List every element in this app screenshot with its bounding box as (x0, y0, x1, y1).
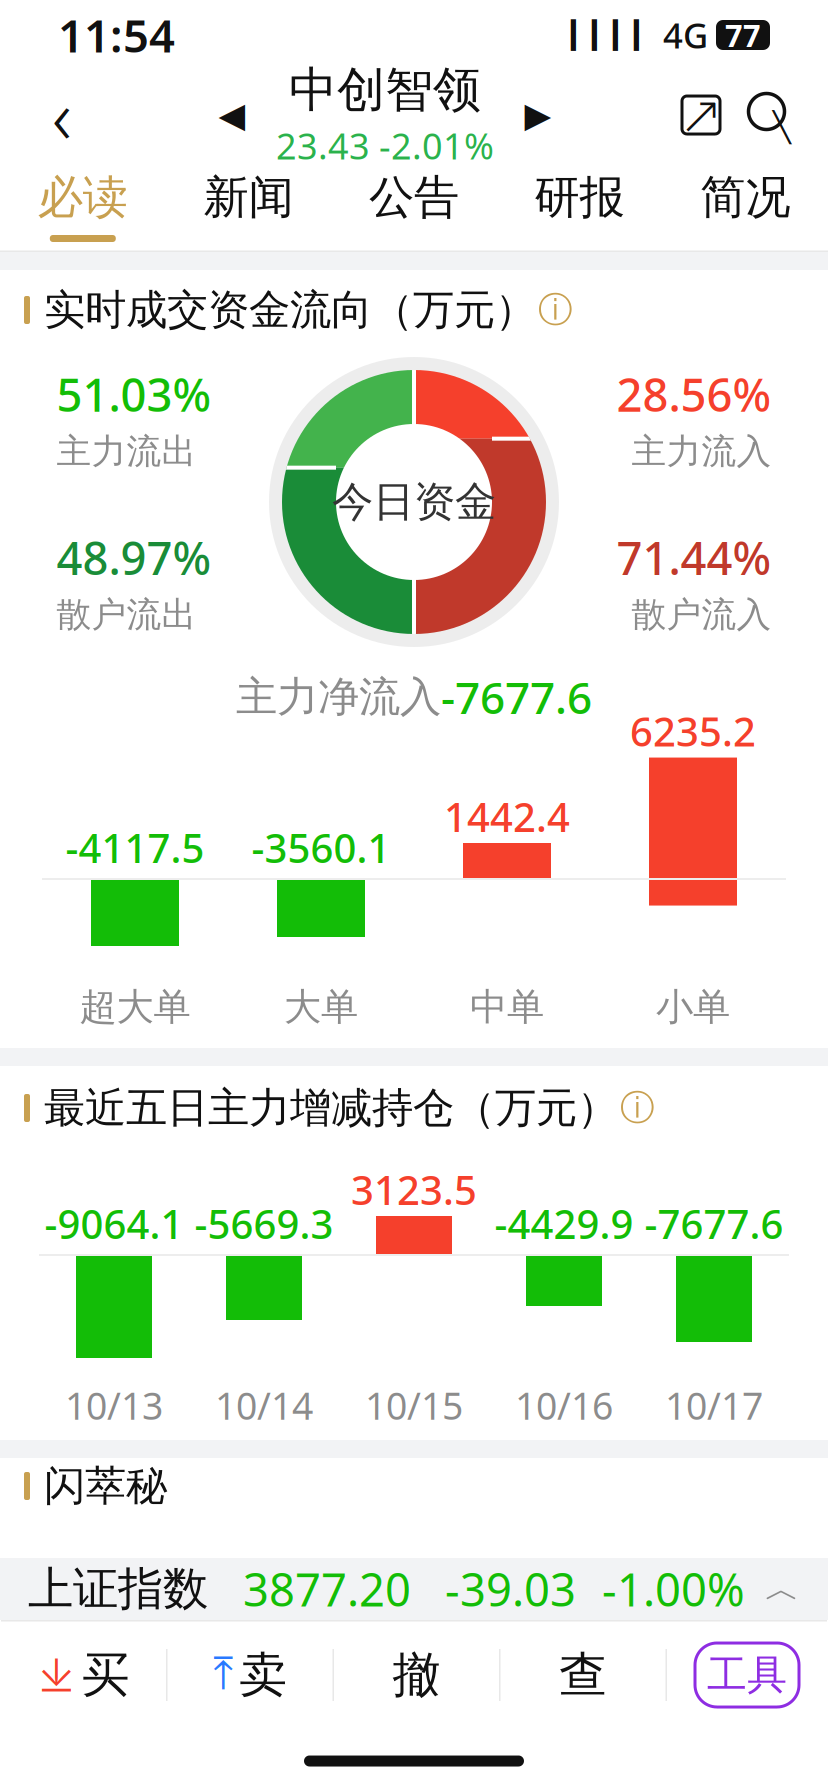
button[interactable]: ⤓ (1, 1627, 166, 1723)
staticText: 简况 (700, 170, 790, 225)
staticText: ▎▎▎▎ (571, 20, 655, 50)
button[interactable]: 简况 (662, 160, 828, 252)
staticText: -3560.1 (251, 821, 390, 874)
staticText: 研报 (535, 170, 625, 225)
staticText: 10/14 (215, 1380, 313, 1430)
staticText: ︿ (765, 1568, 800, 1610)
button[interactable]: 必读 (0, 160, 166, 252)
staticText: 4G (663, 12, 708, 58)
staticText: 11:54 (58, 5, 175, 65)
staticText: 77 (725, 15, 761, 55)
staticText: 大单 (284, 984, 358, 1030)
staticText: 主力流入 (631, 430, 771, 473)
staticText: 必读 (38, 170, 128, 225)
staticText: 10/13 (65, 1380, 163, 1430)
staticText: 新闻 (203, 170, 293, 225)
staticText: -5669.3 (194, 1197, 333, 1250)
staticText: ⓘ (620, 1087, 655, 1129)
staticText: ⤒ (213, 1653, 233, 1697)
staticText: 公告 (369, 170, 459, 225)
staticText: 中创智领 (289, 61, 481, 120)
staticText: 10/17 (665, 1380, 763, 1430)
staticText: 48.97% (56, 527, 211, 587)
staticText: 查 (559, 1645, 607, 1704)
button[interactable]: Search (734, 70, 806, 160)
staticText: 6235.2 (630, 704, 756, 757)
staticText: 散户流出 (56, 593, 196, 636)
staticText: ◀ (218, 95, 245, 135)
staticText: 小单 (656, 984, 730, 1030)
staticText: ↗ (678, 85, 723, 145)
staticText: 28.56% (616, 364, 771, 424)
staticText: 买 (81, 1645, 129, 1704)
staticText: 主力净流入 (236, 672, 441, 722)
staticText: 3877.20 (243, 1559, 411, 1619)
staticText: -7677.6 (441, 668, 592, 726)
staticText: -1.00% (602, 1559, 745, 1619)
button[interactable]: Previous stock (204, 70, 260, 160)
staticText: 23.43 -2.01% (276, 122, 494, 169)
button[interactable]: 查 (500, 1627, 665, 1723)
staticText: 10/15 (365, 1380, 463, 1430)
button[interactable]: Next stock (510, 70, 566, 160)
staticText: 71.44% (616, 527, 771, 587)
staticText: 今日资金 (332, 477, 496, 527)
staticText: 上证指数 (28, 1561, 208, 1617)
staticText: 10/16 (515, 1380, 613, 1430)
button[interactable]: Back (22, 70, 102, 160)
staticText: ▶ (524, 95, 551, 135)
staticText: 卖 (239, 1645, 287, 1704)
staticText: 3123.5 (351, 1163, 477, 1216)
staticText: ╲ (773, 110, 791, 144)
staticText: 实时成交资金流向（万元） (44, 285, 536, 335)
button[interactable]: 研报 (497, 160, 662, 252)
staticText: 主力流出 (56, 430, 196, 473)
staticText: 撤 (392, 1645, 440, 1704)
button[interactable]: 公告 (331, 160, 497, 252)
button[interactable]: 撤 (334, 1627, 499, 1723)
button[interactable]: 工具 (667, 1627, 827, 1723)
staticText: 工具 (707, 1650, 787, 1699)
staticText: 51.03% (56, 364, 211, 424)
staticText: -9064.1 (44, 1197, 183, 1250)
button[interactable]: 上证指数 (0, 1558, 828, 1620)
staticText: 闪萃秘 (44, 1461, 167, 1511)
button[interactable]: 新闻 (166, 160, 331, 252)
staticText: -39.03 (445, 1559, 576, 1619)
staticText: 最近五日主力增减持仓（万元） (44, 1083, 618, 1133)
staticText: -4429.9 (494, 1197, 633, 1250)
staticText: ‹ (52, 65, 72, 165)
staticText: 散户流入 (631, 593, 771, 636)
staticText: 中单 (470, 984, 544, 1030)
button[interactable]: ⤒ (167, 1627, 332, 1723)
staticText: -7677.6 (644, 1197, 783, 1250)
staticText: 超大单 (79, 984, 190, 1030)
button[interactable]: Share (668, 70, 734, 160)
staticText: 1442.4 (444, 790, 570, 843)
staticText: ⓘ (538, 289, 573, 331)
staticText: ⤓ (37, 1648, 75, 1702)
staticText: -4117.5 (65, 821, 204, 874)
